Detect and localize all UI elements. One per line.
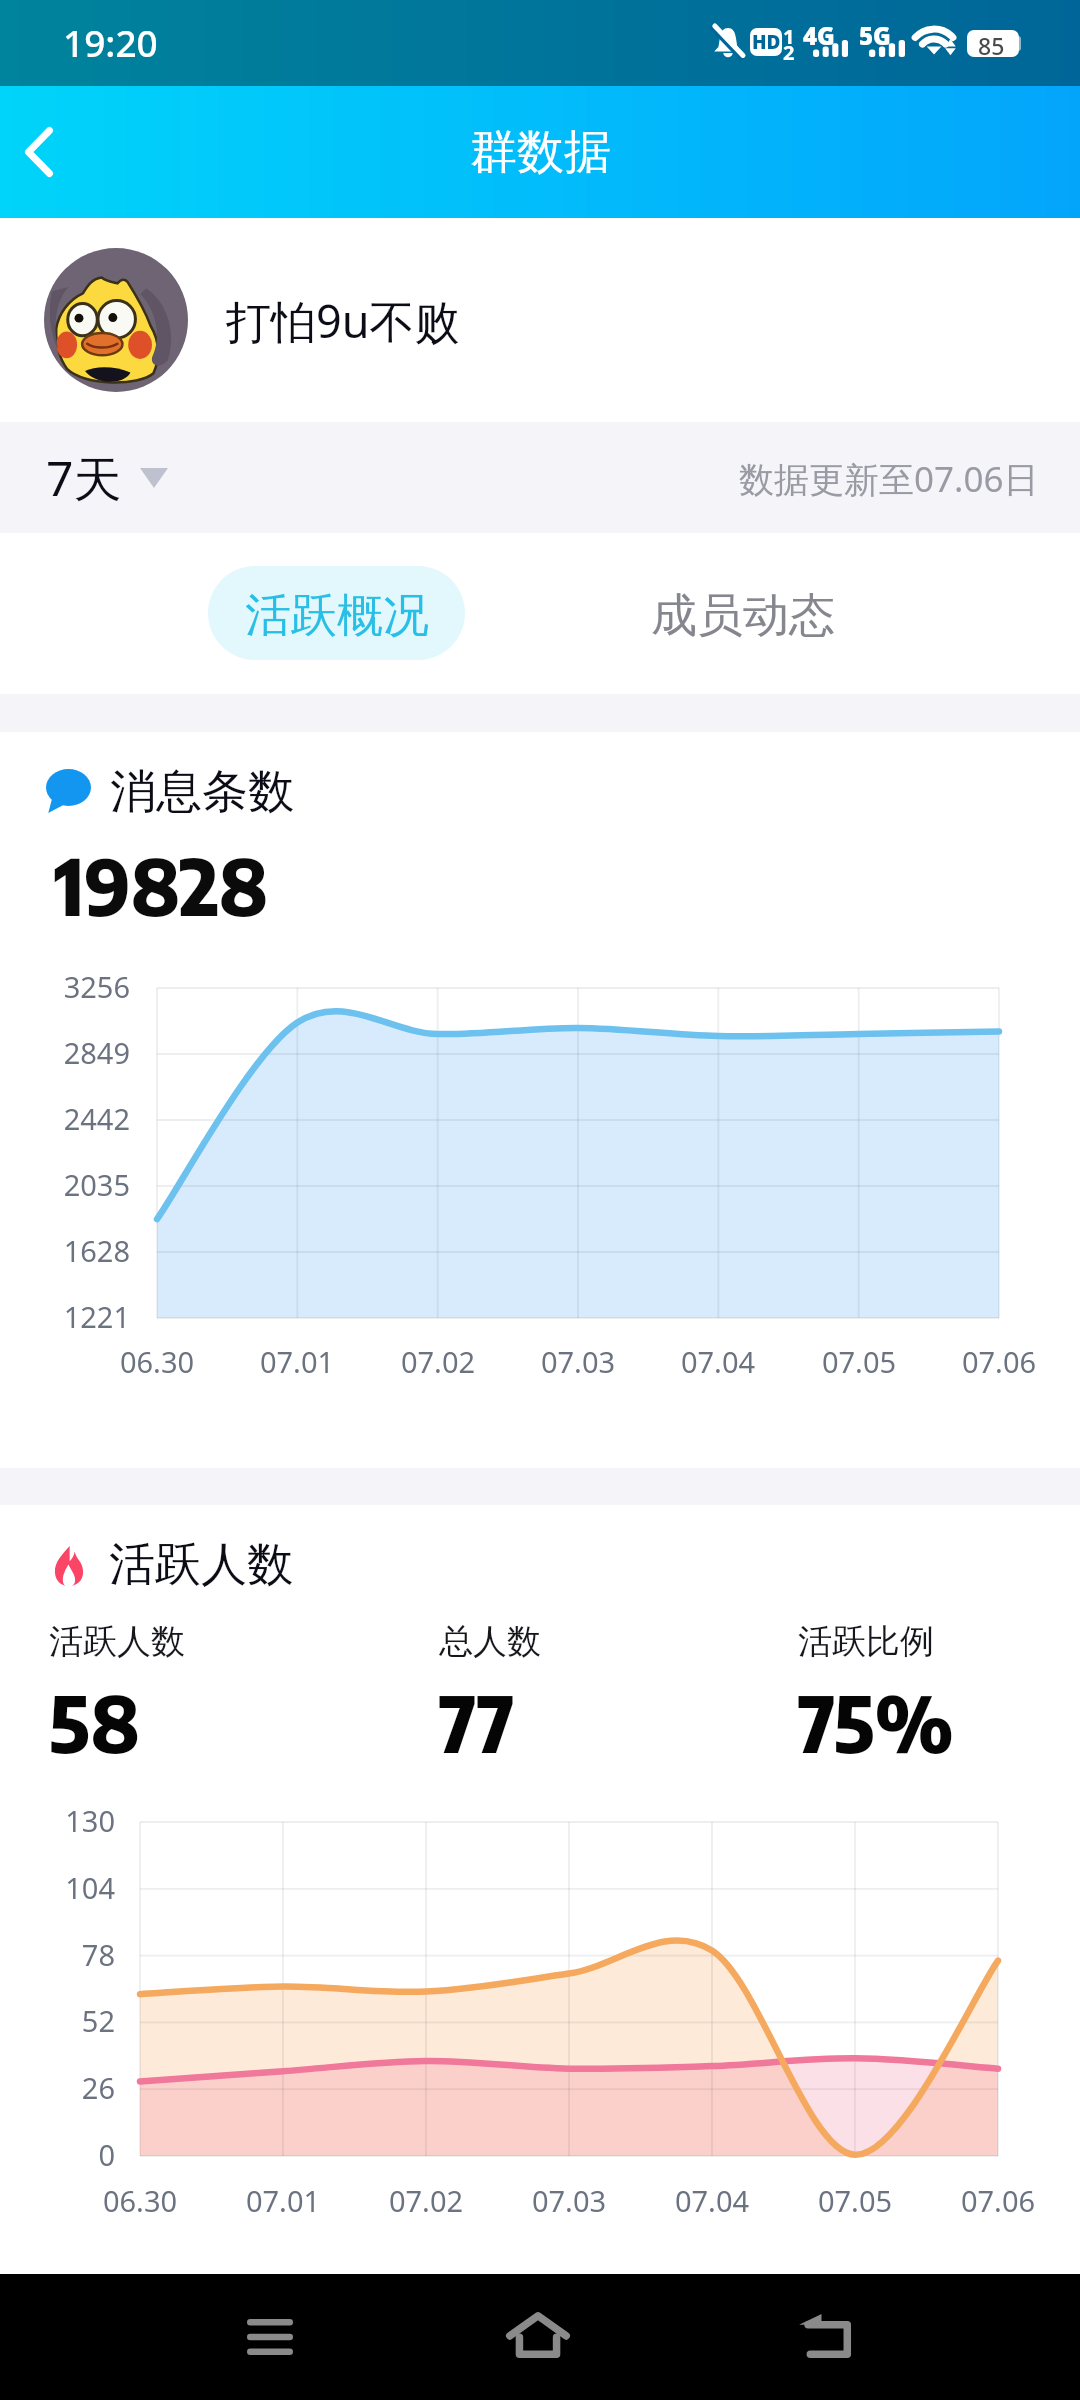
button[interactable]: 7天	[30, 422, 184, 533]
button[interactable]: Recents	[200, 2274, 340, 2400]
staticText: 130	[0, 1801, 115, 1840]
staticText: 1628	[0, 1231, 130, 1270]
staticText: 07.04	[638, 1342, 798, 1381]
staticText: 1221	[0, 1297, 130, 1336]
staticText: 打怕9u不败	[226, 290, 460, 351]
button[interactable]: Home	[468, 2272, 608, 2398]
staticText: 07.03	[489, 2181, 649, 2220]
staticText: 2	[783, 39, 795, 66]
staticText: 06.30	[77, 1342, 237, 1381]
staticText: 活跃人数	[49, 1620, 185, 1663]
staticText: 26	[0, 2068, 115, 2107]
staticText: 19:20	[63, 17, 158, 67]
staticText: 78	[0, 1935, 115, 1974]
button[interactable]: 活跃概况	[208, 566, 465, 660]
staticText: 07.04	[632, 2181, 792, 2220]
staticText: 2442	[0, 1099, 130, 1138]
staticText: 数据更新至07.06日	[739, 455, 1039, 503]
staticText: 2849	[0, 1033, 130, 1072]
staticText: 5G	[859, 19, 891, 52]
staticText: HD	[752, 29, 781, 55]
button[interactable]: 成员动态	[614, 566, 871, 660]
staticText: 06.30	[60, 2181, 220, 2220]
staticText: 活跃人数	[109, 1536, 293, 1594]
staticText: 07.06	[919, 1342, 1079, 1381]
staticText: 07.05	[775, 2181, 935, 2220]
staticText: 07.03	[498, 1342, 658, 1381]
staticText: 成员动态	[651, 587, 835, 645]
button[interactable]: Back	[756, 2272, 896, 2398]
staticText: 3256	[0, 967, 130, 1006]
staticText: 07.01	[217, 1342, 377, 1381]
staticText: 4G	[803, 19, 835, 52]
staticText: 07.05	[779, 1342, 939, 1381]
staticText: 19828	[54, 837, 269, 933]
staticText: 85	[978, 30, 1005, 57]
button[interactable]: Back	[0, 102, 89, 202]
staticText: 07.02	[346, 2181, 506, 2220]
staticText: 58	[49, 1674, 140, 1770]
staticText: 07.01	[203, 2181, 363, 2220]
staticText: 1	[783, 23, 795, 50]
staticText: 104	[0, 1868, 115, 1907]
staticText: 总人数	[439, 1620, 541, 1663]
staticText: 消息条数	[110, 763, 294, 821]
staticText: 07.06	[918, 2181, 1078, 2220]
staticText: 7天	[46, 445, 122, 511]
staticText: 活跃比例	[798, 1620, 934, 1663]
staticText: 75%	[798, 1674, 954, 1770]
staticText: 77	[439, 1674, 515, 1770]
staticText: 群数据	[470, 123, 611, 182]
staticText: 0	[0, 2135, 115, 2174]
staticText: 活跃概况	[245, 587, 429, 645]
staticText: 07.02	[358, 1342, 518, 1381]
staticText: 2035	[0, 1165, 130, 1204]
staticText: 52	[0, 2001, 115, 2040]
button[interactable]: 打怕9u不败	[0, 218, 1080, 422]
